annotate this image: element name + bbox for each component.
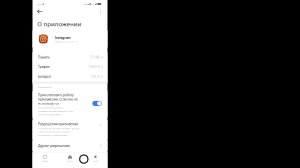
button[interactable]: Назад xyxy=(46,42,90,72)
button[interactable]: Instagram xyxy=(32,152,300,168)
staticText: О приложении xyxy=(56,99,277,141)
staticText: 12:47 xyxy=(55,13,86,29)
